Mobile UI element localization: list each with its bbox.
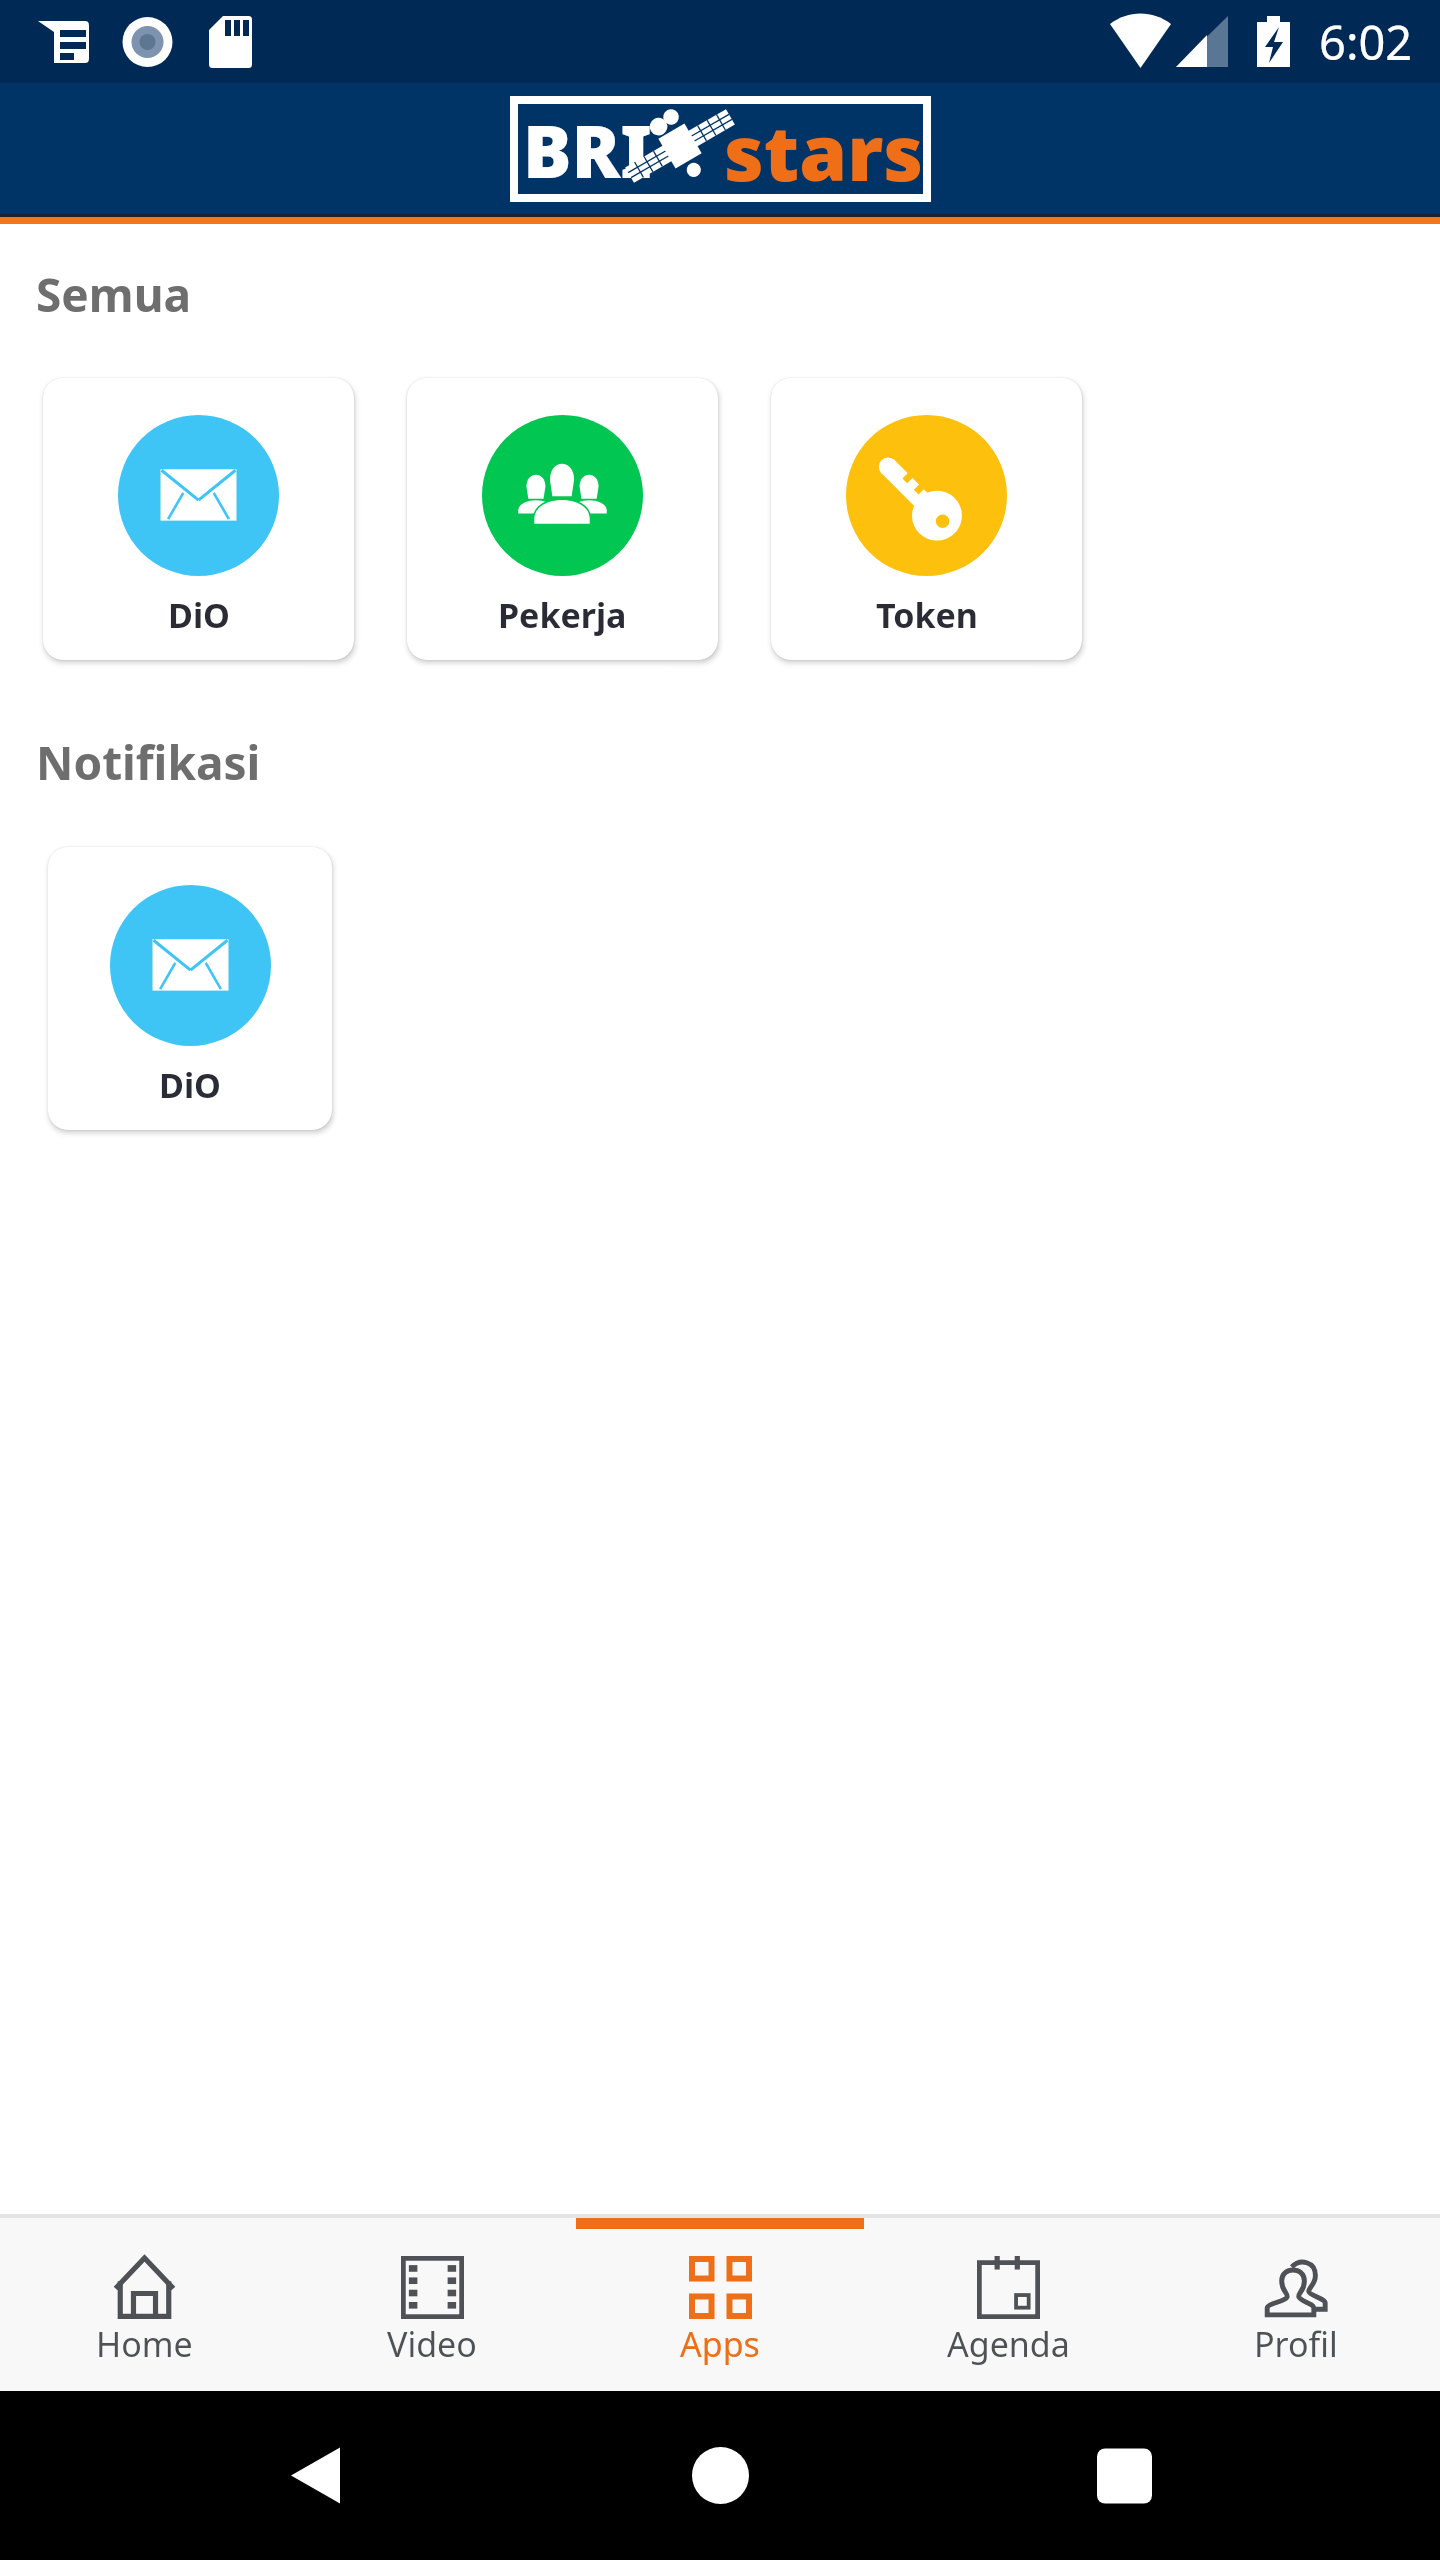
button[interactable]: Profil xyxy=(1152,2218,1440,2391)
button[interactable]: DiO xyxy=(43,378,354,660)
staticText: 6:02 xyxy=(1319,10,1413,74)
button[interactable]: Home xyxy=(0,2218,288,2391)
staticText: stars xyxy=(724,99,924,204)
staticText: Profil xyxy=(1254,2321,1338,2367)
staticText: Semua xyxy=(36,263,192,326)
staticText: Pekerja xyxy=(498,592,627,638)
staticText: Apps xyxy=(680,2321,760,2367)
button[interactable]: Apps xyxy=(576,2218,864,2391)
staticText: Token xyxy=(876,592,978,638)
button[interactable]: DiO xyxy=(48,847,332,1130)
button[interactable]: Home xyxy=(636,2391,805,2560)
staticText: DiO xyxy=(159,1062,221,1108)
button[interactable]: BRI stars xyxy=(510,96,931,202)
staticText: Notifikasi xyxy=(36,731,261,794)
staticText: BRI xyxy=(523,101,652,199)
button[interactable]: Agenda xyxy=(864,2218,1152,2391)
button[interactable]: Recent apps xyxy=(1040,2391,1209,2560)
other: Status bar xyxy=(0,0,1440,83)
staticText: Video xyxy=(387,2321,477,2367)
button[interactable]: Pekerja xyxy=(407,378,718,660)
staticText: Agenda xyxy=(947,2321,1070,2367)
staticText: DiO xyxy=(168,592,230,638)
button[interactable]: Back xyxy=(231,2391,400,2560)
button[interactable]: Token xyxy=(771,378,1082,660)
button[interactable]: Video xyxy=(288,2218,576,2391)
staticText: Home xyxy=(96,2321,193,2367)
